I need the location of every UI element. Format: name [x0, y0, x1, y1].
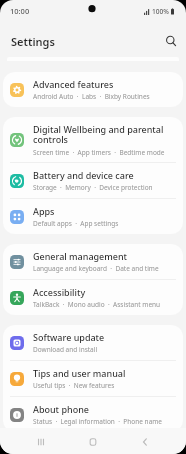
staticText: Tips and user manual — [33, 367, 126, 379]
staticText: About phone — [33, 403, 89, 415]
staticText: Default apps · App settings — [33, 219, 119, 228]
button[interactable]: Back — [132, 430, 158, 454]
staticText: Language and keyboard · Date and time — [33, 264, 159, 273]
button[interactable]: Search — [160, 30, 182, 52]
staticText: Status · Legal information · Phone name — [33, 417, 163, 426]
staticText: Screen time · App timers · Bedtime mode — [33, 148, 165, 157]
staticText: Advanced features — [33, 78, 114, 90]
staticText: TalkBack · Mono audio · Assistant menu — [33, 300, 161, 309]
staticText: Apps — [33, 205, 55, 217]
button[interactable]: Software update — [3, 325, 183, 360]
button[interactable]: General management — [3, 244, 183, 279]
button[interactable]: About phone — [3, 397, 183, 432]
button[interactable]: Advanced features — [3, 72, 183, 107]
staticText: 10:00 — [10, 6, 30, 16]
button[interactable]: Apps — [3, 199, 183, 234]
staticText: 100% — [152, 7, 169, 16]
staticText: Settings — [11, 34, 55, 49]
staticText: Digital Wellbeing and parental controls — [33, 123, 175, 146]
staticText: Accessibility — [33, 286, 86, 298]
staticText: Software update — [33, 331, 105, 343]
button[interactable]: Tips and user manual — [3, 361, 183, 396]
staticText: Useful tips · New features — [33, 381, 115, 390]
staticText: Download and install — [33, 345, 98, 354]
button[interactable]: Recent apps — [28, 430, 54, 454]
button[interactable]: Accessibility — [3, 280, 183, 315]
button[interactable]: Battery and device care — [3, 163, 183, 198]
staticText: Android Auto · Labs · Bixby Routines — [33, 92, 150, 101]
button[interactable]: Home — [80, 430, 106, 454]
staticText: Battery and device care — [33, 169, 134, 181]
staticText: General management — [33, 250, 128, 262]
staticText: Storage · Memory · Device protection — [33, 183, 153, 192]
button[interactable]: Digital Wellbeing and parental controls — [3, 117, 183, 162]
